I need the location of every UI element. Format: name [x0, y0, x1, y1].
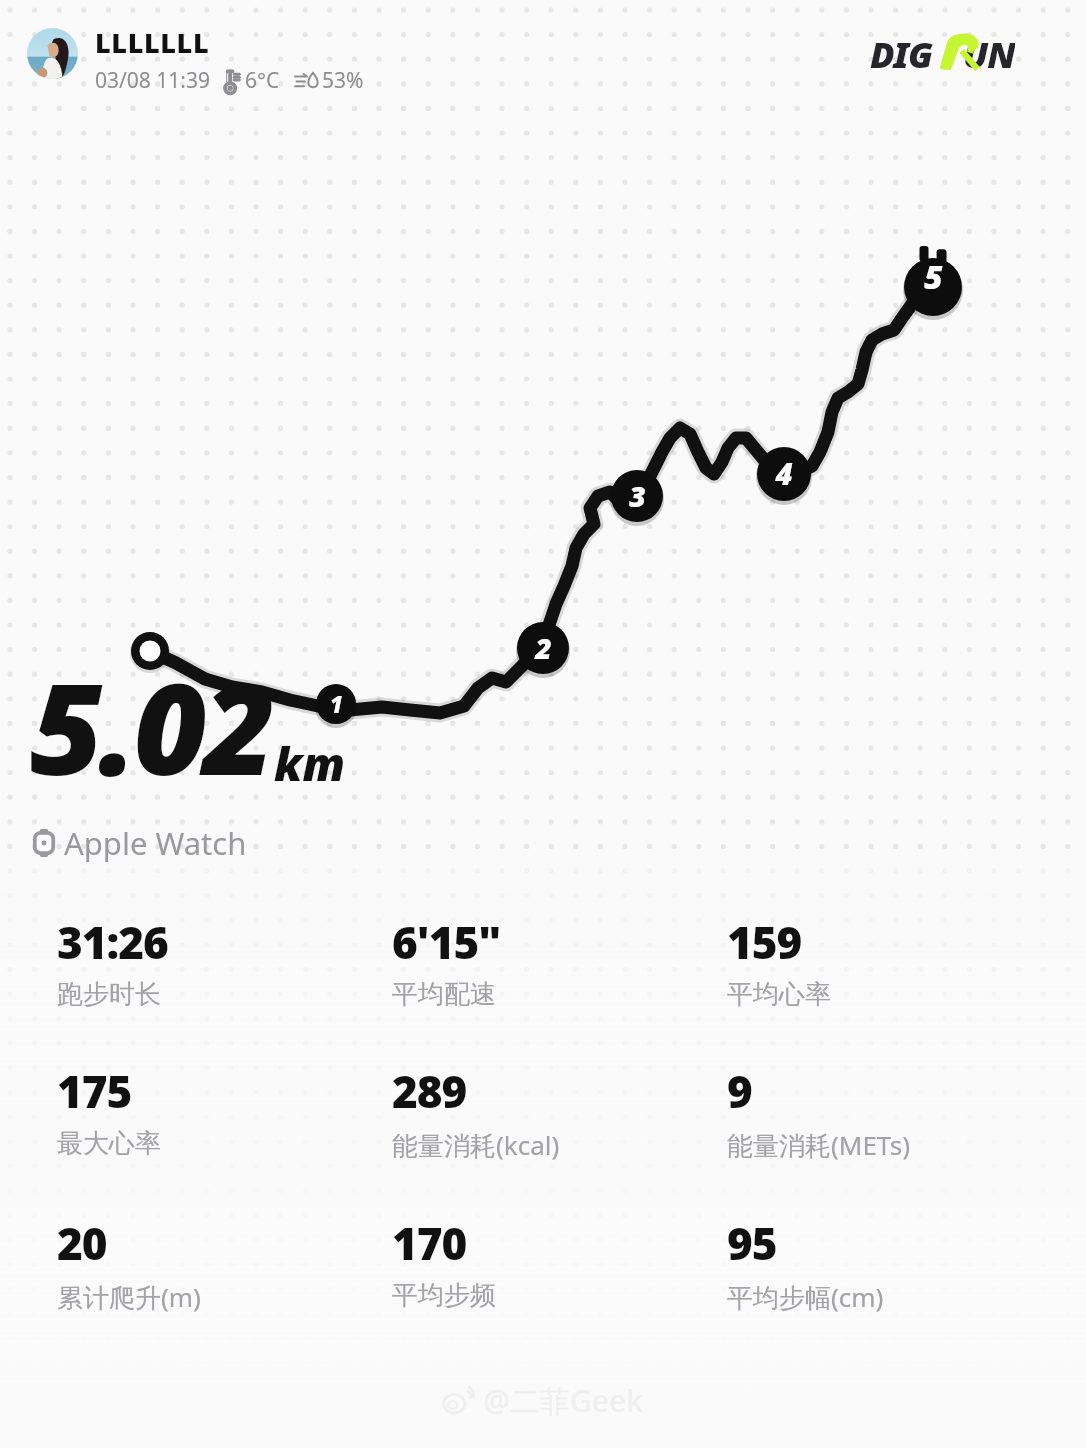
button[interactable]: 95 [727, 1213, 1062, 1315]
button[interactable]: 9 [727, 1061, 1062, 1163]
staticText: 175 [57, 1061, 132, 1121]
button[interactable]: DIGRUN logo [870, 30, 1066, 72]
button[interactable]: 289 [392, 1061, 727, 1163]
button[interactable]: 175 [57, 1061, 392, 1160]
staticText: 95 [727, 1213, 777, 1273]
staticText: 289 [392, 1061, 467, 1121]
button[interactable]: Profile photo [27, 28, 78, 79]
staticText: 平均步幅(cm) [727, 1279, 884, 1315]
staticText: 能量消耗(kcal) [392, 1127, 560, 1163]
staticText: 最大心率 [57, 1127, 161, 1160]
staticText: 3 [629, 477, 646, 516]
staticText: 平均步频 [392, 1279, 496, 1312]
staticText: 平均心率 [727, 978, 831, 1011]
staticText: 5.02 [30, 640, 272, 812]
staticText: 159 [727, 912, 802, 972]
staticText: 9 [727, 1061, 752, 1121]
staticText: 170 [392, 1213, 467, 1273]
staticText: 跑步时长 [57, 978, 161, 1011]
staticText: 4 [775, 454, 793, 494]
button[interactable]: 159 [727, 912, 1062, 1011]
staticText: UN [963, 30, 1015, 72]
staticText: 累计爬升(m) [57, 1279, 201, 1315]
staticText: 20 [57, 1213, 107, 1273]
staticText: LLLLLLL [95, 24, 210, 61]
button[interactable]: Apple Watch [33, 822, 247, 864]
staticText: Apple Watch [64, 822, 247, 864]
staticText: km [274, 732, 345, 795]
button[interactable]: 6'15" [392, 912, 727, 1011]
staticText: 03/08 11:39 [95, 66, 210, 95]
staticText: 1 [330, 689, 343, 719]
staticText: 31:26 [57, 912, 168, 972]
staticText: 平均配速 [392, 978, 496, 1011]
staticText: 53% [322, 66, 364, 95]
button[interactable]: 20 [57, 1213, 392, 1315]
staticText: DIG [870, 30, 933, 72]
staticText: 6'15" [392, 912, 501, 972]
button[interactable]: 31:26 [57, 912, 392, 1011]
staticText: 2 [535, 629, 552, 668]
staticText: 6°C [245, 66, 280, 95]
button[interactable]: 170 [392, 1213, 727, 1312]
staticText: 能量消耗(METs) [727, 1127, 910, 1163]
staticText: 5 [924, 255, 943, 298]
staticText: @二菲Geek [483, 1380, 643, 1421]
